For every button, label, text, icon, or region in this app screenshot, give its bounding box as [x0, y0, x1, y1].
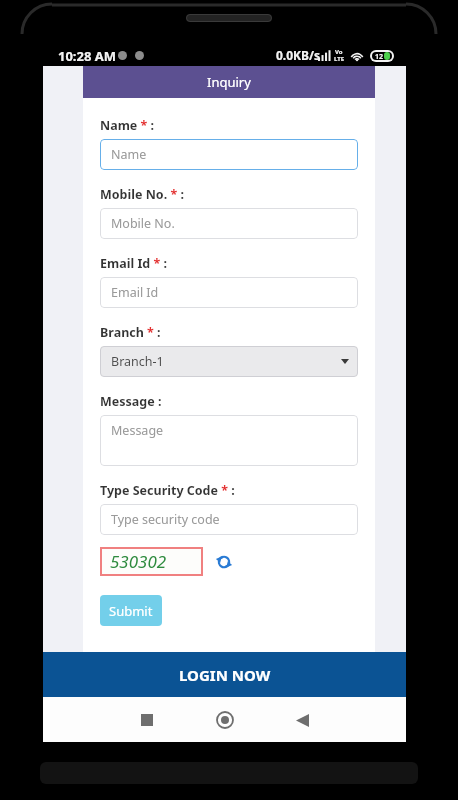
staticText: Email Id * :: [100, 255, 167, 272]
staticText: 0.0KB/s: [276, 47, 321, 63]
staticText: Vo: [335, 48, 343, 56]
staticText: Submit: [109, 602, 153, 620]
button[interactable]: Inquiry: [83, 66, 375, 98]
staticText: Mobile No.: [111, 215, 175, 232]
staticText: LTE: [334, 55, 345, 63]
button[interactable]: Name: [100, 139, 358, 170]
staticText: 10:28 AM: [58, 47, 117, 65]
button[interactable]: Branch-1: [100, 346, 358, 377]
staticText: Name: [111, 146, 147, 163]
staticText: 12: [375, 52, 384, 60]
staticText: Message :: [100, 393, 162, 410]
button[interactable]: Refresh security code: [213, 551, 235, 573]
staticText: Type security code: [111, 511, 220, 528]
button[interactable]: Home: [207, 702, 243, 738]
staticText: LOGIN NOW: [179, 665, 271, 685]
button[interactable]: Email Id: [100, 277, 358, 308]
button[interactable]: Recents: [129, 702, 165, 738]
button[interactable]: Type security code: [100, 504, 358, 535]
staticText: 530302: [110, 550, 167, 573]
staticText: Inquiry: [207, 73, 251, 91]
staticText: Type Security Code * :: [100, 482, 235, 499]
staticText: Branch * :: [100, 324, 161, 341]
staticText: Branch-1: [111, 353, 164, 370]
button[interactable]: Mobile No.: [100, 208, 358, 239]
button[interactable]: LOGIN NOW: [43, 652, 406, 697]
staticText: Message: [111, 422, 164, 439]
staticText: Email Id: [111, 284, 159, 301]
staticText: Mobile No. * :: [100, 186, 184, 203]
staticText: Name * :: [100, 117, 155, 134]
button[interactable]: Message: [100, 415, 358, 466]
button[interactable]: Submit: [100, 595, 162, 626]
button[interactable]: Back: [284, 702, 320, 738]
